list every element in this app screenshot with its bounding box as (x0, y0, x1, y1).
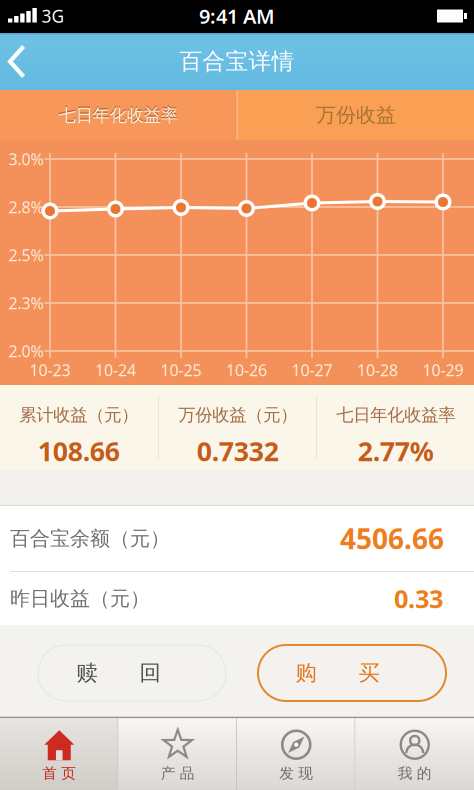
staticText: 昨日收益（元） (10, 586, 150, 611)
staticText: 0.7332 (197, 433, 279, 469)
button[interactable]: Back (0, 33, 40, 90)
staticText: 七日年化收益率 (336, 404, 455, 426)
staticText: 3G (41, 4, 64, 27)
button[interactable]: 我 的 (355, 718, 474, 790)
staticText: 我 的 (398, 764, 432, 782)
staticText: 赎 (76, 660, 97, 686)
button[interactable]: 发 现 (237, 718, 355, 790)
staticText: 万份收益（元） (178, 404, 297, 426)
staticText: 万份收益 (316, 103, 396, 127)
staticText: 9:41 AM (199, 3, 275, 29)
staticText: 百合宝详情 (179, 48, 294, 75)
staticText: 产 品 (161, 764, 195, 782)
staticText: 七日年化收益率 (59, 105, 178, 126)
staticText: 2.5% (8, 244, 43, 266)
staticText: 10-24 (95, 359, 136, 381)
staticText: 七日年化收益率 (59, 103, 178, 125)
staticText: 百合宝余额（元） (10, 526, 170, 551)
staticText: 2.3% (8, 292, 43, 314)
staticText: 首 页 (42, 764, 76, 782)
staticText: 10-25 (160, 359, 201, 381)
staticText: 10-28 (357, 359, 398, 381)
staticText: 发 现 (279, 764, 313, 782)
button[interactable]: 万份收益 (238, 90, 474, 140)
staticText: 10-29 (422, 359, 463, 381)
staticText: 10-27 (291, 359, 332, 381)
staticText: 购 (295, 660, 316, 686)
button[interactable]: 购 (258, 645, 446, 701)
staticText: 108.66 (38, 433, 120, 469)
staticText: 4506.66 (340, 520, 444, 557)
staticText: 买 (358, 660, 379, 686)
button[interactable]: 赎 (38, 645, 226, 701)
staticText: 10-23 (29, 359, 70, 381)
button[interactable]: 七日年化收益率 (0, 90, 236, 140)
staticText: 回 (139, 660, 160, 686)
staticText: 10-26 (226, 359, 267, 381)
staticText: 3.0% (8, 148, 43, 170)
staticText: 2.77% (358, 433, 434, 469)
staticText: 2.8% (8, 196, 43, 218)
button[interactable]: 产 品 (118, 718, 237, 790)
staticText: 0.33 (394, 582, 443, 615)
staticText: 累计收益（元） (19, 404, 138, 426)
button[interactable]: 首 页 (0, 718, 118, 790)
staticText: 2.0% (8, 340, 43, 362)
